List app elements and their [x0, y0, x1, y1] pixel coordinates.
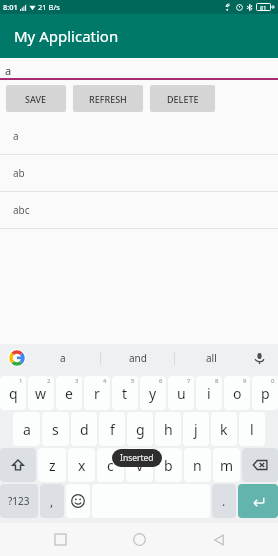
button[interactable]: all [175, 344, 248, 372]
button[interactable]: h [155, 412, 181, 446]
button[interactable]: d [71, 412, 97, 446]
button[interactable]: k [211, 412, 237, 446]
staticText: q [9, 384, 18, 403]
staticText: , [50, 493, 54, 509]
staticText: b [164, 456, 173, 475]
staticText: My Application [14, 26, 119, 46]
staticText: d [80, 420, 89, 439]
staticText: w [35, 384, 47, 403]
button[interactable]: a [0, 58, 278, 81]
staticText: v [136, 456, 144, 475]
button[interactable]: m [213, 448, 240, 482]
staticText: l [250, 420, 254, 439]
staticText: g [136, 420, 145, 439]
staticText: 3 [75, 377, 79, 385]
staticText: 21 B/s [38, 2, 60, 12]
staticText: 4 [103, 377, 107, 385]
button[interactable]: Emoji [66, 484, 90, 518]
staticText: a [60, 351, 66, 365]
button[interactable]: o [224, 376, 250, 410]
button[interactable]: Enter [238, 484, 278, 518]
staticText: abc [13, 203, 30, 217]
staticText: z [49, 456, 56, 475]
staticText: Inserted [120, 452, 154, 464]
button[interactable]: j [183, 412, 209, 446]
button[interactable]: y [140, 376, 166, 410]
button[interactable]: Shift [0, 448, 36, 482]
staticText: 6 [159, 377, 163, 385]
button[interactable]: Recents [40, 523, 80, 556]
staticText: a [13, 129, 19, 143]
staticText: e [65, 384, 73, 403]
staticText: h [164, 420, 173, 439]
staticText: m [220, 456, 234, 475]
staticText: a [5, 63, 12, 78]
staticText: 81 [260, 4, 267, 11]
button[interactable]: b [155, 448, 182, 482]
staticText: ab [13, 166, 25, 180]
button[interactable]: ab [0, 155, 278, 192]
staticText: k [220, 420, 228, 439]
staticText: f [110, 420, 115, 439]
staticText: . [222, 493, 226, 509]
button[interactable]: Google [8, 349, 26, 367]
button[interactable]: s [42, 412, 69, 446]
button[interactable]: Backspace [242, 448, 278, 482]
staticText: n [193, 456, 202, 475]
button[interactable]: g [127, 412, 153, 446]
staticText: 2 [47, 377, 51, 385]
staticText: j [194, 420, 198, 439]
staticText: t [122, 384, 128, 403]
button[interactable]: and [101, 344, 174, 372]
staticText: 5 [131, 377, 135, 385]
button[interactable]: x [68, 448, 95, 482]
staticText: and [129, 351, 147, 365]
button[interactable]: a [0, 118, 278, 155]
button[interactable]: q [0, 376, 26, 410]
button[interactable]: REFRESH [73, 85, 143, 112]
button[interactable]: My Application [0, 14, 278, 58]
button[interactable]: p [252, 376, 278, 410]
staticText: 8:01 [3, 2, 18, 12]
staticText: 1 [19, 377, 23, 385]
button[interactable]: i [196, 376, 222, 410]
button[interactable]: SAVE [6, 85, 66, 112]
button[interactable]: n [184, 448, 211, 482]
button[interactable]: u [168, 376, 194, 410]
staticText: 9 [243, 377, 247, 385]
button[interactable]: l [239, 412, 265, 446]
staticText: c [107, 456, 114, 475]
staticText: r [94, 384, 100, 403]
staticText: DELETE [167, 93, 199, 105]
staticText: all [206, 351, 217, 365]
button[interactable]: w [28, 376, 54, 410]
button[interactable]: e [56, 376, 82, 410]
button[interactable]: , [40, 484, 64, 518]
staticText: y [149, 384, 157, 403]
staticText: o [233, 384, 242, 403]
button[interactable]: a [13, 412, 40, 446]
button[interactable]: z [38, 448, 66, 482]
button[interactable]: Back [199, 523, 239, 556]
staticText: 0 [271, 377, 275, 385]
button[interactable]: t [112, 376, 138, 410]
button[interactable]: Voice input [248, 344, 270, 372]
button[interactable]: c [97, 448, 124, 482]
button[interactable]: f [99, 412, 125, 446]
staticText: u [177, 384, 186, 403]
staticText: x [78, 456, 86, 475]
button[interactable]: abc [0, 192, 278, 229]
button[interactable]: v [126, 448, 153, 482]
button[interactable]: Home [119, 523, 159, 556]
staticText: a [23, 420, 31, 439]
button[interactable]: ?123 [0, 484, 38, 518]
staticText: p [261, 384, 270, 403]
button[interactable]: a [26, 344, 100, 372]
staticText: REFRESH [89, 93, 127, 105]
button[interactable]: DELETE [150, 85, 215, 112]
button[interactable]: . [212, 484, 236, 518]
staticText: SAVE [25, 93, 47, 105]
staticText: s [52, 420, 59, 439]
button[interactable]: r [84, 376, 110, 410]
